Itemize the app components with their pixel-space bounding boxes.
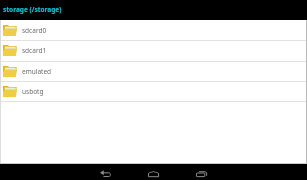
button[interactable]: Recent apps <box>196 164 207 180</box>
staticText: sdcard1 <box>22 46 47 55</box>
button[interactable]: sdcard1 <box>0 40 307 60</box>
button[interactable]: Home <box>148 164 159 180</box>
button[interactable]: emulated <box>0 61 307 81</box>
button[interactable]: usbotg <box>0 81 307 101</box>
staticText: storage (/storage) <box>3 5 62 14</box>
button[interactable]: sdcard0 <box>0 20 307 40</box>
staticText: usbotg <box>22 87 44 96</box>
button[interactable]: storage (/storage) <box>0 0 307 20</box>
staticText: emulated <box>22 67 52 76</box>
staticText: sdcard0 <box>22 26 47 35</box>
button[interactable]: Back <box>100 164 111 180</box>
